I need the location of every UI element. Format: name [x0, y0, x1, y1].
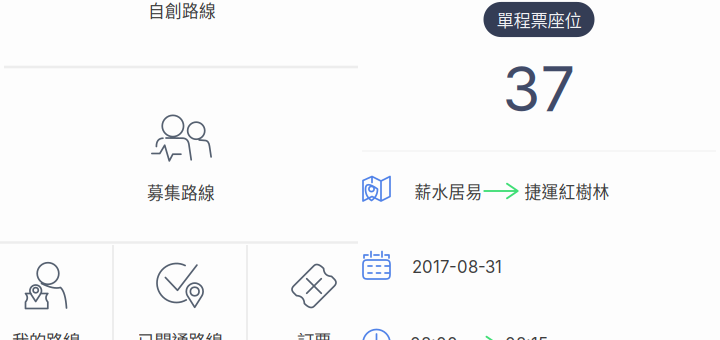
- button[interactable]: 已開通路線: [113, 244, 247, 340]
- staticText: 2017-08-31: [412, 257, 502, 277]
- button[interactable]: 我的路線: [0, 244, 113, 340]
- staticText: 訂票: [297, 327, 331, 340]
- staticText: 募集路線: [147, 180, 215, 204]
- staticText: 08:15: [505, 334, 548, 340]
- staticText: 08:00: [410, 334, 458, 340]
- staticText: 已開通路線: [137, 327, 222, 340]
- staticText: 我的路線: [12, 327, 80, 340]
- staticText: 自創路線: [148, 0, 216, 22]
- staticText: 捷運紅樹林: [524, 179, 609, 203]
- staticText: 37: [502, 52, 575, 126]
- button[interactable]: 訂票: [247, 244, 381, 340]
- staticText: 薪水居易: [414, 179, 482, 203]
- staticText: 單程票座位: [496, 7, 581, 32]
